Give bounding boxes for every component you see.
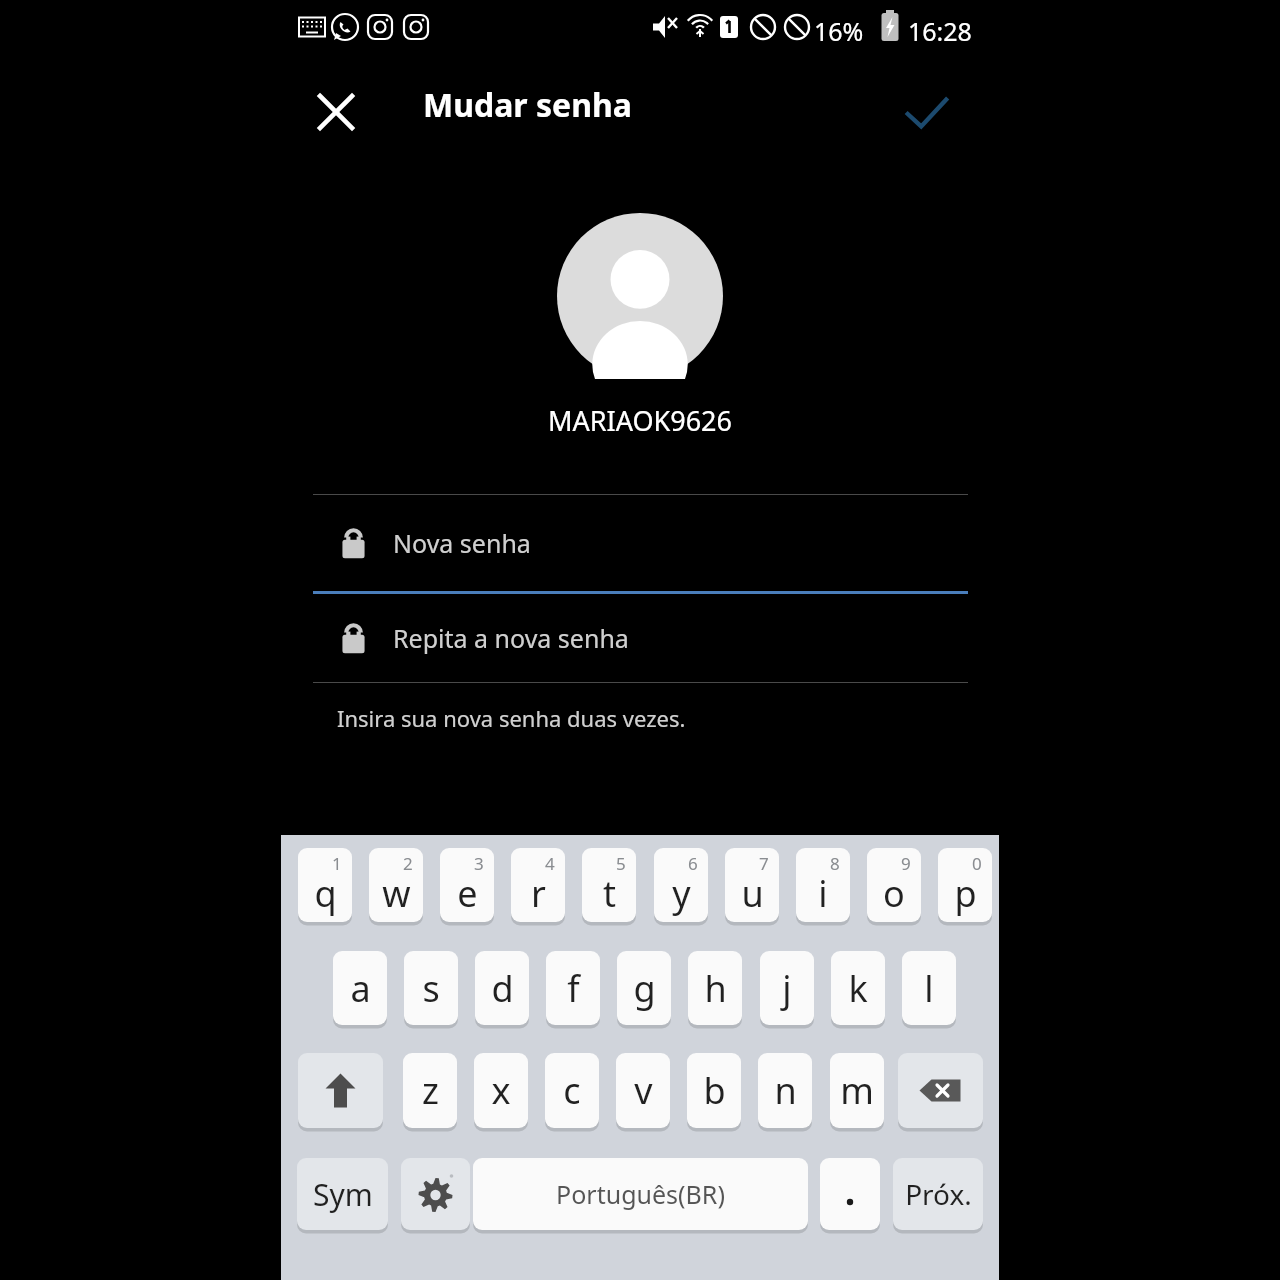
button[interactable]: 9 xyxy=(867,848,921,922)
staticText: 6 xyxy=(688,852,698,875)
staticText: Repita a nova senha xyxy=(393,621,629,655)
staticText: Nova senha xyxy=(393,526,531,560)
staticText: 16:28 xyxy=(908,14,972,48)
staticText: s xyxy=(422,964,440,1013)
staticText: 3 xyxy=(474,852,484,875)
staticText: n xyxy=(774,1066,797,1115)
button[interactable]: 6 xyxy=(654,848,708,922)
button[interactable]: b xyxy=(687,1053,741,1128)
staticText: d xyxy=(491,964,514,1013)
button[interactable]: Português(BR) xyxy=(473,1158,808,1230)
button[interactable]: 4 xyxy=(511,848,565,922)
button[interactable]: 7 xyxy=(725,848,779,922)
staticText: j xyxy=(782,964,792,1013)
button[interactable]: Configurações xyxy=(401,1158,470,1230)
button[interactable]: Nova senha xyxy=(313,495,968,591)
button[interactable]: s xyxy=(404,951,458,1025)
staticText: Português(BR) xyxy=(556,1177,725,1211)
staticText: o xyxy=(883,869,905,918)
staticText: u xyxy=(741,869,764,918)
staticText: v xyxy=(634,1066,653,1115)
staticText: k xyxy=(848,964,868,1013)
staticText: i xyxy=(818,869,828,918)
button[interactable]: f xyxy=(546,951,600,1025)
staticText: c xyxy=(563,1066,581,1115)
button[interactable]: 2 xyxy=(369,848,423,922)
button[interactable]: Confirmar xyxy=(884,72,968,156)
staticText: l xyxy=(924,964,934,1013)
button[interactable]: 5 xyxy=(582,848,636,922)
staticText: p xyxy=(954,869,977,918)
button[interactable]: c xyxy=(545,1053,599,1128)
staticText: b xyxy=(703,1066,726,1115)
staticText: Mudar senha xyxy=(423,83,632,127)
staticText: Insira sua nova senha duas vezes. xyxy=(337,703,686,733)
button[interactable]: Ponto xyxy=(820,1158,880,1230)
staticText: y xyxy=(672,869,691,918)
staticText: m xyxy=(840,1066,874,1115)
button[interactable]: 8 xyxy=(796,848,850,922)
staticText: Sym xyxy=(313,1174,373,1215)
staticText: h xyxy=(704,964,727,1013)
button[interactable]: d xyxy=(475,951,529,1025)
button[interactable]: k xyxy=(831,951,885,1025)
staticText: t xyxy=(603,869,616,918)
staticText: e xyxy=(457,869,478,918)
staticText: r xyxy=(531,869,546,918)
staticText: 2 xyxy=(403,852,413,875)
staticText: a xyxy=(350,964,371,1013)
button[interactable]: 1 xyxy=(298,848,352,922)
button[interactable]: Apagar xyxy=(898,1053,983,1128)
staticText: 8 xyxy=(830,852,840,875)
staticText: 7 xyxy=(759,852,769,875)
button[interactable]: m xyxy=(830,1053,884,1128)
button[interactable]: Sym xyxy=(297,1158,388,1230)
button[interactable]: 3 xyxy=(440,848,494,922)
staticText: g xyxy=(633,964,656,1013)
button[interactable]: Shift xyxy=(298,1053,383,1128)
staticText: f xyxy=(567,964,580,1013)
button[interactable]: Próx. xyxy=(893,1158,983,1230)
staticText: 5 xyxy=(616,852,626,875)
button[interactable]: n xyxy=(758,1053,812,1128)
staticText: x xyxy=(491,1066,511,1115)
button[interactable]: z xyxy=(403,1053,457,1128)
staticText: 16% xyxy=(814,14,864,48)
button[interactable]: v xyxy=(616,1053,670,1128)
staticText: 1 xyxy=(332,852,342,875)
button[interactable]: Fechar xyxy=(296,72,376,152)
staticText: 4 xyxy=(545,852,555,875)
staticText: 0 xyxy=(972,852,982,875)
button[interactable]: 0 xyxy=(938,848,992,922)
button[interactable]: Repita a nova senha xyxy=(313,594,968,682)
button[interactable]: a xyxy=(333,951,387,1025)
button[interactable]: g xyxy=(617,951,671,1025)
button[interactable]: h xyxy=(688,951,742,1025)
staticText: q xyxy=(314,869,337,918)
button[interactable]: j xyxy=(760,951,814,1025)
button[interactable]: x xyxy=(474,1053,528,1128)
button[interactable]: l xyxy=(902,951,956,1025)
staticText: w xyxy=(382,869,411,918)
staticText: 9 xyxy=(901,852,911,875)
staticText: Próx. xyxy=(905,1175,972,1213)
staticText: z xyxy=(422,1066,439,1115)
staticText: MARIAOK9626 xyxy=(548,402,732,439)
